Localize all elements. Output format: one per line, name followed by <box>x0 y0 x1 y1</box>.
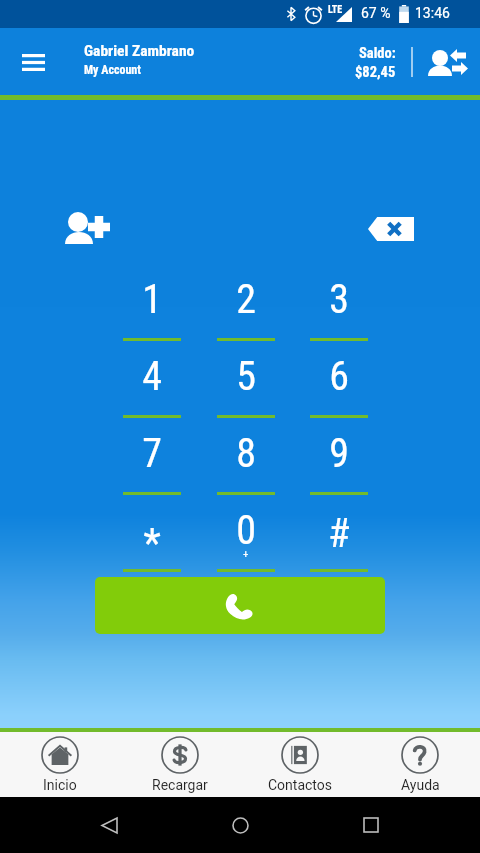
button[interactable]: 4 <box>105 351 199 421</box>
button[interactable]: Inicio <box>0 732 120 797</box>
staticText: 3 <box>329 276 349 323</box>
staticText: # <box>328 510 350 557</box>
staticText: 6 <box>329 353 349 400</box>
staticText: Contactos <box>268 777 333 793</box>
staticText: 13:46 <box>415 5 450 21</box>
button[interactable]: 0 <box>199 505 293 575</box>
staticText: 5 <box>236 353 256 400</box>
staticText: 4 <box>142 353 162 400</box>
staticText: 67 % <box>361 5 391 21</box>
staticText: 8 <box>236 430 256 477</box>
button[interactable]: * <box>105 505 199 575</box>
staticText: Recargar <box>152 777 208 793</box>
staticText: $82,45 <box>355 64 396 81</box>
button[interactable]: 1 <box>105 274 199 344</box>
button[interactable]: # <box>292 505 386 575</box>
button[interactable]: 5 <box>199 351 293 421</box>
button[interactable]: 8 <box>199 428 293 498</box>
staticText: Ayuda <box>401 777 440 793</box>
staticText: + <box>243 548 249 561</box>
button[interactable]: Backspace <box>359 206 423 252</box>
staticText: 0 <box>236 507 256 554</box>
staticText: 1 <box>142 276 162 323</box>
staticText: Saldo: <box>359 45 396 62</box>
button[interactable]: 3 <box>292 274 386 344</box>
staticText: 7 <box>142 430 162 477</box>
button[interactable]: Recents <box>349 803 393 847</box>
staticText: Gabriel Zambrano <box>84 42 195 60</box>
button[interactable]: 9 <box>292 428 386 498</box>
button[interactable]: Contactos <box>240 732 360 797</box>
staticText: My Account <box>84 63 141 77</box>
button[interactable]: Menu <box>12 41 54 83</box>
button[interactable]: 2 <box>199 274 293 344</box>
staticText: LTE <box>328 4 343 16</box>
button[interactable]: Back <box>87 803 131 847</box>
button[interactable]: 6 <box>292 351 386 421</box>
staticText: 9 <box>329 430 349 477</box>
button[interactable]: Transfer balance <box>420 38 476 86</box>
button[interactable]: Home <box>218 803 262 847</box>
staticText: * <box>143 520 161 567</box>
button[interactable]: Call <box>95 577 385 634</box>
staticText: 2 <box>236 276 256 323</box>
staticText: Inicio <box>43 777 77 793</box>
button[interactable]: 7 <box>105 428 199 498</box>
button[interactable]: Add contact <box>56 206 120 252</box>
button[interactable]: Ayuda <box>360 732 480 797</box>
button[interactable]: Recargar <box>120 732 240 797</box>
